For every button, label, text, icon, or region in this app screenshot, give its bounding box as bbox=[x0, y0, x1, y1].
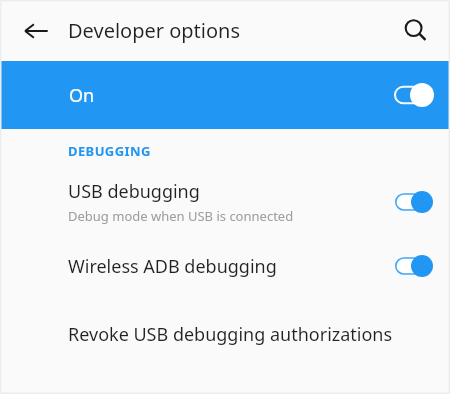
staticText: Developer options bbox=[68, 17, 241, 44]
button[interactable]: Search bbox=[394, 9, 438, 53]
button[interactable]: Toggle developer options bbox=[394, 83, 434, 107]
button[interactable]: On bbox=[0, 61, 450, 129]
staticText: Wireless ADB debugging bbox=[68, 254, 277, 279]
staticText: USB debugging bbox=[68, 179, 200, 204]
button[interactable]: USB debugging bbox=[0, 169, 450, 235]
button[interactable]: Revoke USB debugging authorizations bbox=[0, 297, 450, 367]
button[interactable]: Back bbox=[12, 7, 60, 55]
button[interactable]: Toggle bbox=[395, 255, 433, 277]
button[interactable]: Wireless ADB debugging bbox=[0, 235, 450, 297]
button[interactable]: Toggle bbox=[395, 191, 433, 213]
staticText: Revoke USB debugging authorizations bbox=[68, 322, 393, 347]
staticText: DEBUGGING bbox=[68, 142, 151, 160]
staticText: On bbox=[69, 83, 95, 108]
staticText: Debug mode when USB is connected bbox=[68, 207, 294, 225]
